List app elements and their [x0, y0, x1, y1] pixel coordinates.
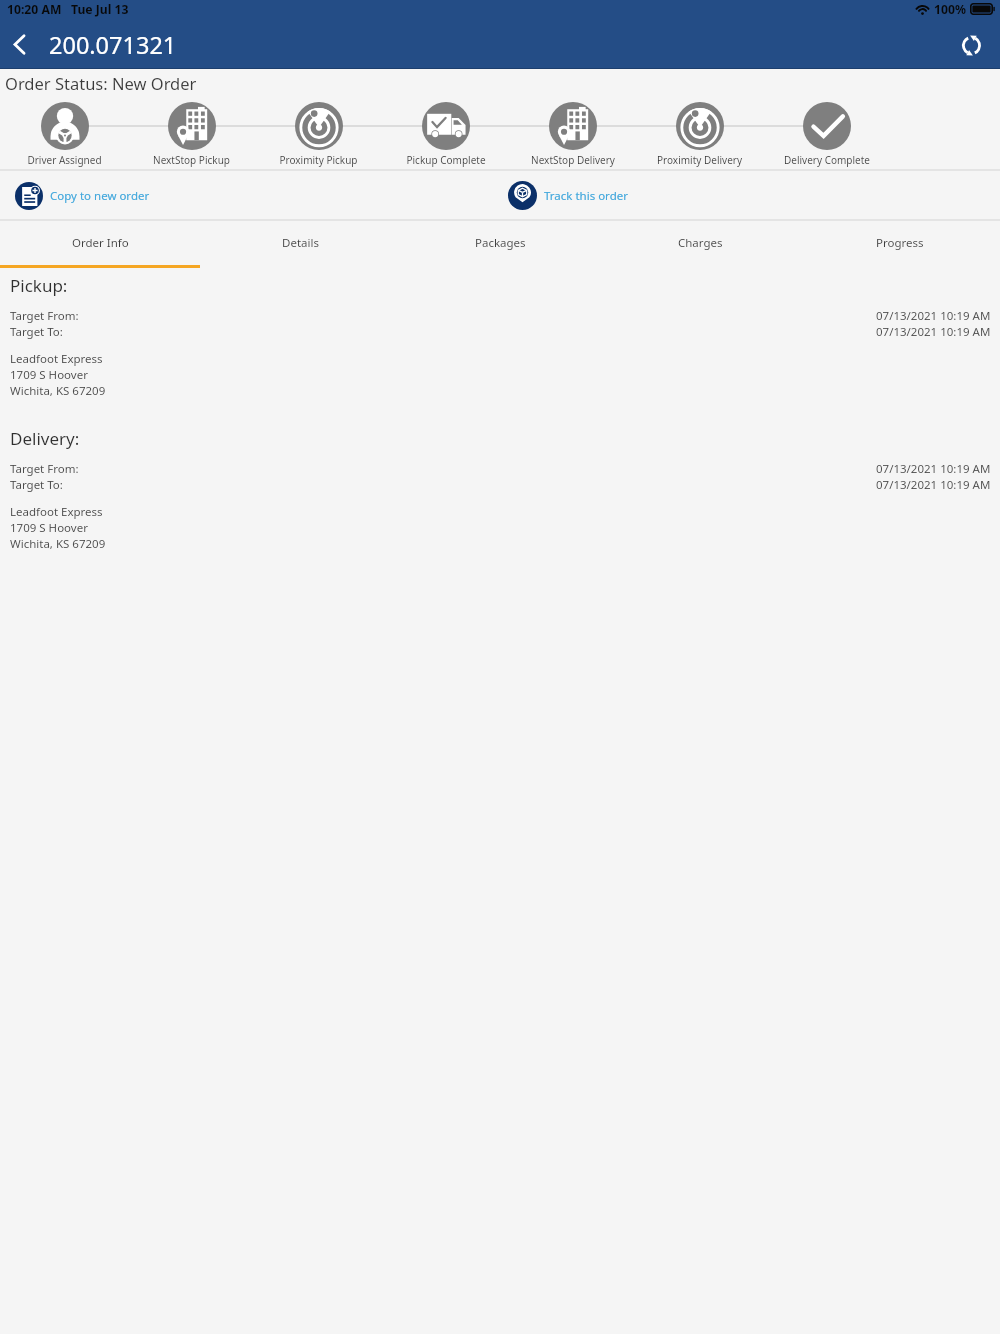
button[interactable]: Track this order [508, 181, 628, 210]
button[interactable]: Packages [400, 220, 600, 268]
staticText: Wichita, KS 67209 [10, 383, 106, 399]
button[interactable]: NextStop Delivery [509, 102, 636, 167]
button[interactable]: Refresh [947, 21, 995, 69]
staticText: Order Info [72, 235, 129, 251]
staticText: Tue Jul 13 [71, 1, 129, 18]
button[interactable]: NextStop Pickup [128, 102, 255, 167]
staticText: Details [282, 235, 319, 251]
button[interactable]: Proximity Pickup [255, 102, 382, 167]
staticText: Proximity Pickup [279, 153, 358, 167]
staticText: Charges [678, 235, 723, 251]
button[interactable]: Proximity Delivery [636, 102, 763, 167]
staticText: Track this order [544, 188, 628, 204]
button[interactable]: Delivery Complete [763, 102, 890, 167]
staticText: Target To: [10, 324, 63, 340]
staticText: 07/13/2021 10:19 AM [876, 477, 991, 493]
staticText: 10:20 AM [7, 1, 62, 18]
staticText: Target To: [10, 477, 63, 493]
staticText: Pickup Complete [406, 153, 486, 167]
staticText: Target From: [10, 308, 79, 324]
staticText: Order Status: New Order [5, 72, 197, 94]
button[interactable]: Charges [600, 220, 800, 268]
staticText: 07/13/2021 10:19 AM [876, 324, 991, 340]
staticText: Copy to new order [50, 188, 150, 204]
button[interactable]: Copy to new order [15, 181, 150, 210]
staticText: NextStop Pickup [153, 153, 230, 167]
button[interactable]: Details [200, 220, 400, 268]
staticText: 200.071321 [49, 29, 177, 61]
staticText: Target From: [10, 461, 79, 477]
staticText: Pickup: [10, 274, 68, 297]
staticText: 100% [934, 1, 966, 18]
staticText: Packages [475, 235, 526, 251]
button[interactable]: Order Info [0, 220, 200, 268]
staticText: NextStop Delivery [531, 153, 615, 167]
staticText: Driver Assigned [27, 153, 102, 167]
staticText: Proximity Delivery [657, 153, 742, 167]
button[interactable]: Progress [800, 220, 1000, 268]
staticText: 07/13/2021 10:19 AM [876, 461, 991, 477]
staticText: Delivery: [10, 427, 80, 450]
staticText: 1709 S Hoover [10, 367, 88, 383]
staticText: Leadfoot Express [10, 351, 103, 367]
staticText: Progress [876, 235, 924, 251]
button[interactable]: Back [0, 20, 38, 69]
button[interactable]: Driver Assigned [1, 102, 128, 167]
staticText: 07/13/2021 10:19 AM [876, 308, 991, 324]
button[interactable]: Pickup Complete [382, 102, 509, 167]
staticText: Wichita, KS 67209 [10, 536, 106, 552]
staticText: Leadfoot Express [10, 504, 103, 520]
staticText: 1709 S Hoover [10, 520, 88, 536]
staticText: Delivery Complete [784, 153, 870, 167]
